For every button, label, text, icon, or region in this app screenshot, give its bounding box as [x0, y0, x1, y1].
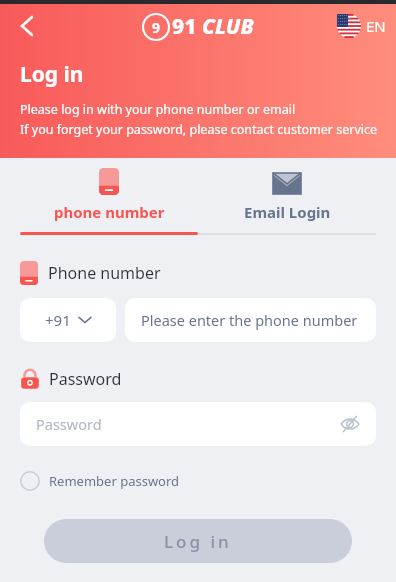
staticText: CLUB — [202, 12, 254, 41]
staticText: Phone number — [48, 262, 161, 284]
button[interactable]: Remember password — [20, 471, 180, 491]
staticText: Please enter the phone number — [141, 310, 358, 330]
button[interactable]: Password — [20, 402, 376, 446]
staticText: +91 — [45, 310, 71, 330]
staticText: Log in — [164, 530, 232, 553]
staticText: Remember password — [49, 472, 180, 490]
staticText: Log in — [20, 60, 84, 89]
button[interactable]: phone number — [20, 168, 198, 222]
staticText: EN — [366, 16, 386, 36]
button[interactable]: Show password — [338, 412, 362, 436]
button[interactable]: Email Login — [198, 168, 376, 222]
staticText: Email Login — [244, 202, 331, 222]
button[interactable]: EN — [337, 14, 386, 38]
staticText: Password — [36, 414, 102, 434]
button[interactable]: Log in — [44, 519, 352, 563]
staticText: Password — [49, 368, 122, 390]
button[interactable]: Please enter the phone number — [125, 298, 376, 342]
button[interactable]: Back — [10, 9, 44, 43]
staticText: Please log in with your phone number or … — [20, 101, 296, 118]
button[interactable]: +91 — [20, 298, 116, 342]
staticText: 91 — [172, 12, 197, 41]
staticText: phone number — [54, 202, 165, 222]
staticText: 9 — [152, 18, 161, 37]
staticText: If you forget your password, please cont… — [20, 121, 378, 138]
